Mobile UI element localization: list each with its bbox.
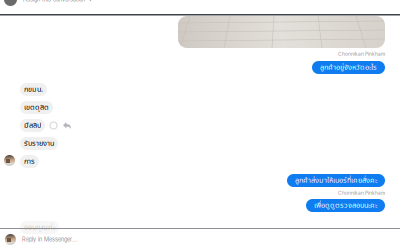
- button[interactable]: Reply in Messenger...: [0, 229, 400, 250]
- button[interactable]: Reply: [63, 122, 71, 129]
- button[interactable]: การ: [20, 155, 39, 168]
- staticText: กขมน.: [24, 84, 43, 95]
- staticText: เพื่อดูดูตรวจสอบนะคะ: [314, 200, 377, 211]
- button[interactable]: เพื่อดูดูตรวจสอบนะคะ: [306, 199, 385, 212]
- staticText: ขอบคุณค่ะ: [24, 222, 55, 233]
- staticText: การ: [24, 156, 35, 167]
- button[interactable]: Assign this conversation ▾: [0, 0, 400, 6]
- staticText: ลูกค้าส่งมาให้เบอร์ที่เคยสั่งคะ: [295, 175, 377, 186]
- button[interactable]: รับรายงาน: [20, 137, 58, 150]
- button[interactable]: เขตดุสิต: [20, 101, 53, 114]
- button[interactable]: ลูกค้าอยู่จังหวัดอะไร: [312, 61, 385, 74]
- button[interactable]: React: [50, 122, 57, 129]
- button[interactable]: ลูกค้าส่งมาให้เบอร์ที่เคยสั่งคะ: [287, 174, 385, 187]
- staticText: รับรายงาน: [24, 138, 54, 149]
- staticText: เขตดุสิต: [24, 102, 49, 113]
- staticText: Chonnikan Pinkham: [338, 190, 385, 196]
- staticText: Reply in Messenger...: [22, 236, 78, 243]
- button[interactable]: มีสลิป: [20, 119, 45, 132]
- button[interactable]: กขมน.: [20, 83, 47, 96]
- staticText: Chonnikan Pinkham: [338, 51, 385, 57]
- staticText: ลูกค้าอยู่จังหวัดอะไร: [320, 62, 377, 73]
- staticText: มีสลิป: [24, 120, 41, 131]
- staticText: Assign this conversation ▾: [23, 0, 92, 3]
